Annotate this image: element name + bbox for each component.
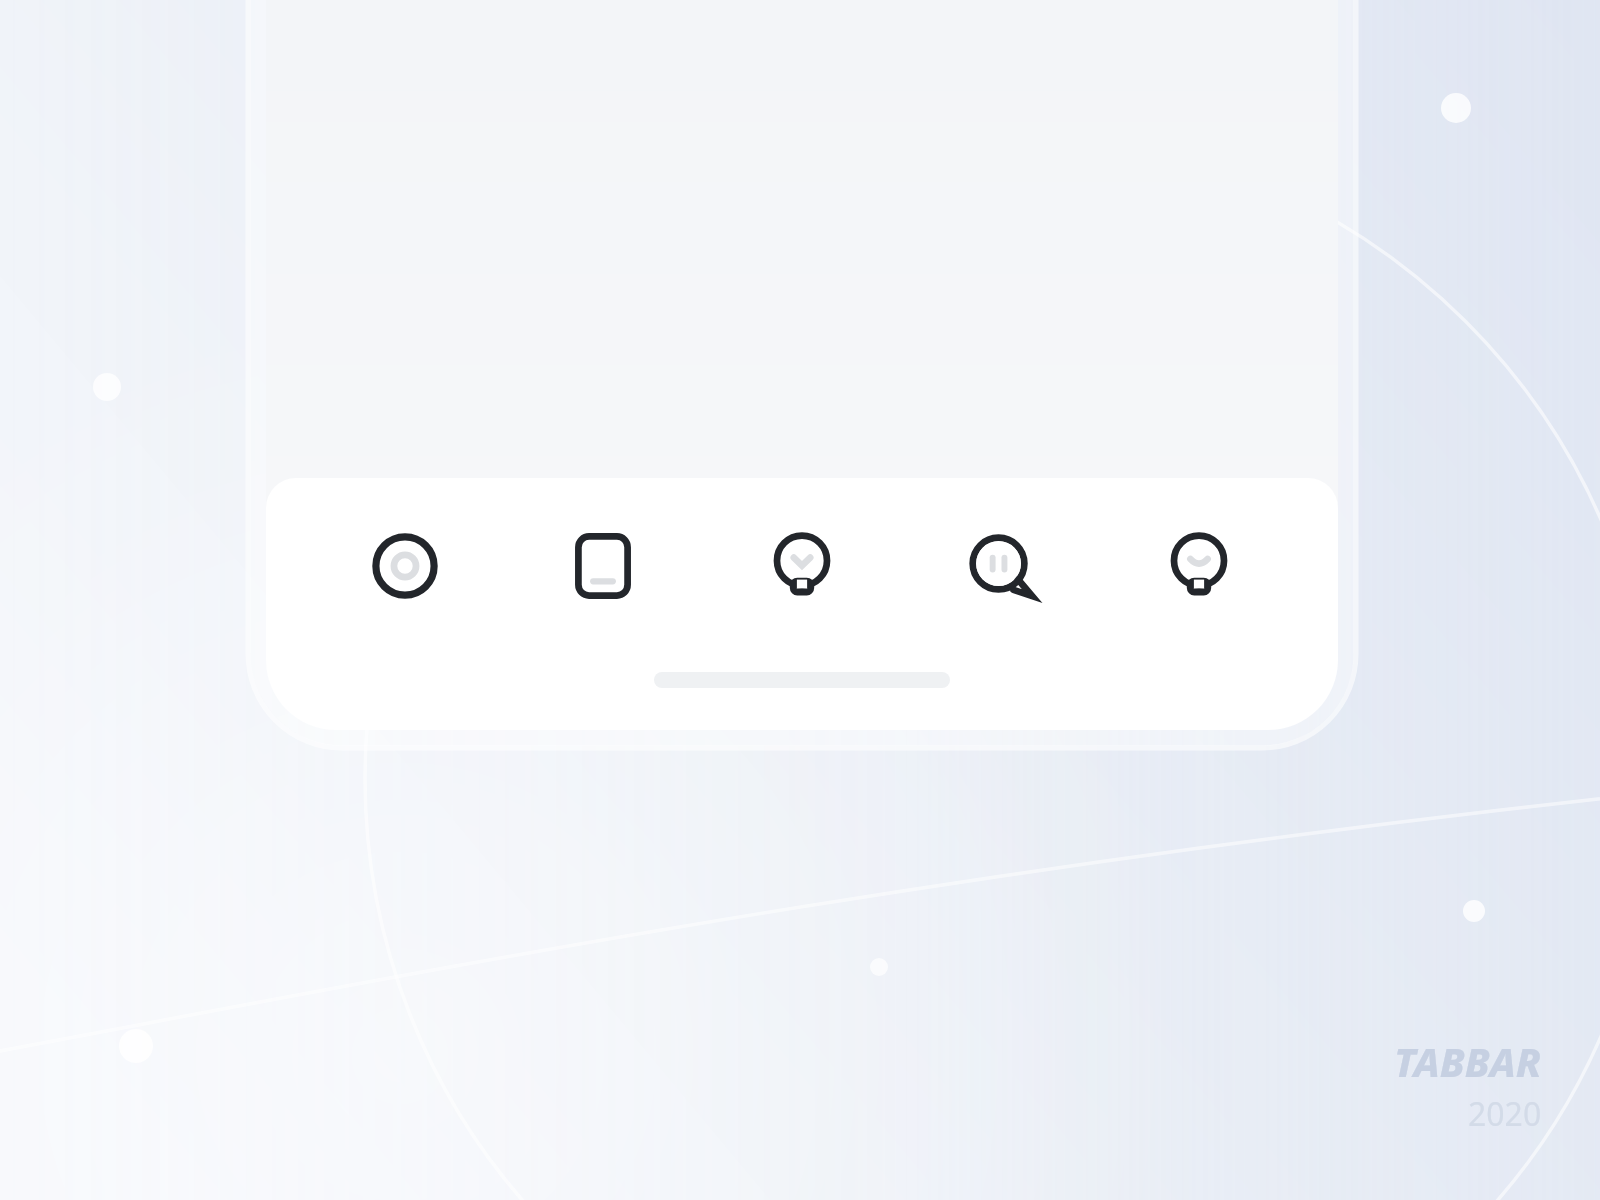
button[interactable]: Ideas	[742, 506, 862, 626]
button[interactable]: Record	[345, 506, 465, 626]
staticText: 2020	[1468, 1092, 1542, 1136]
button[interactable]: Library	[543, 506, 663, 626]
button[interactable]: Messages	[941, 506, 1061, 626]
staticText: TABBAR	[1394, 1034, 1542, 1088]
button[interactable]: Discover	[1139, 506, 1259, 626]
